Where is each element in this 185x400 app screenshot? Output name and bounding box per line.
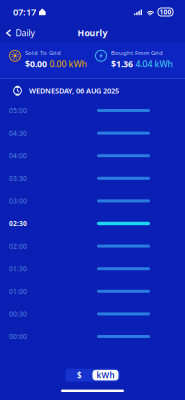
staticText: kWh xyxy=(96,370,114,381)
staticText: 04:30 xyxy=(9,129,27,138)
button[interactable]: $ xyxy=(66,370,92,380)
staticText: $ xyxy=(77,370,82,381)
staticText: 04:00 xyxy=(9,151,27,160)
staticText: 02:30 xyxy=(9,219,27,228)
staticText: 01:30 xyxy=(9,264,27,273)
staticText: $1.36 xyxy=(111,58,133,70)
staticText: 02:00 xyxy=(9,242,27,251)
staticText: 100 xyxy=(159,7,171,17)
staticText: 00:00 xyxy=(9,332,27,341)
staticText: 00:30 xyxy=(9,309,27,318)
staticText: 03:00 xyxy=(9,196,27,205)
staticText: 4.04 kWh xyxy=(135,58,173,70)
staticText: $0.00 xyxy=(25,58,47,70)
staticText: WEDNESDAY, 06 AUG 2025 xyxy=(29,86,119,96)
staticText: 01:00 xyxy=(9,287,27,296)
staticText: Daily xyxy=(15,27,34,39)
staticText: 0.00 kWh xyxy=(49,58,87,70)
staticText: 05:00 xyxy=(9,106,27,115)
staticText: 03:30 xyxy=(9,174,27,183)
button[interactable]: Daily xyxy=(0,24,39,42)
staticText: 07:17 xyxy=(13,6,36,18)
staticText: Bought From Grid xyxy=(111,49,163,57)
staticText: Sold To Grid xyxy=(25,49,61,57)
button[interactable]: kWh xyxy=(92,370,118,380)
staticText: Hourly xyxy=(77,27,107,39)
